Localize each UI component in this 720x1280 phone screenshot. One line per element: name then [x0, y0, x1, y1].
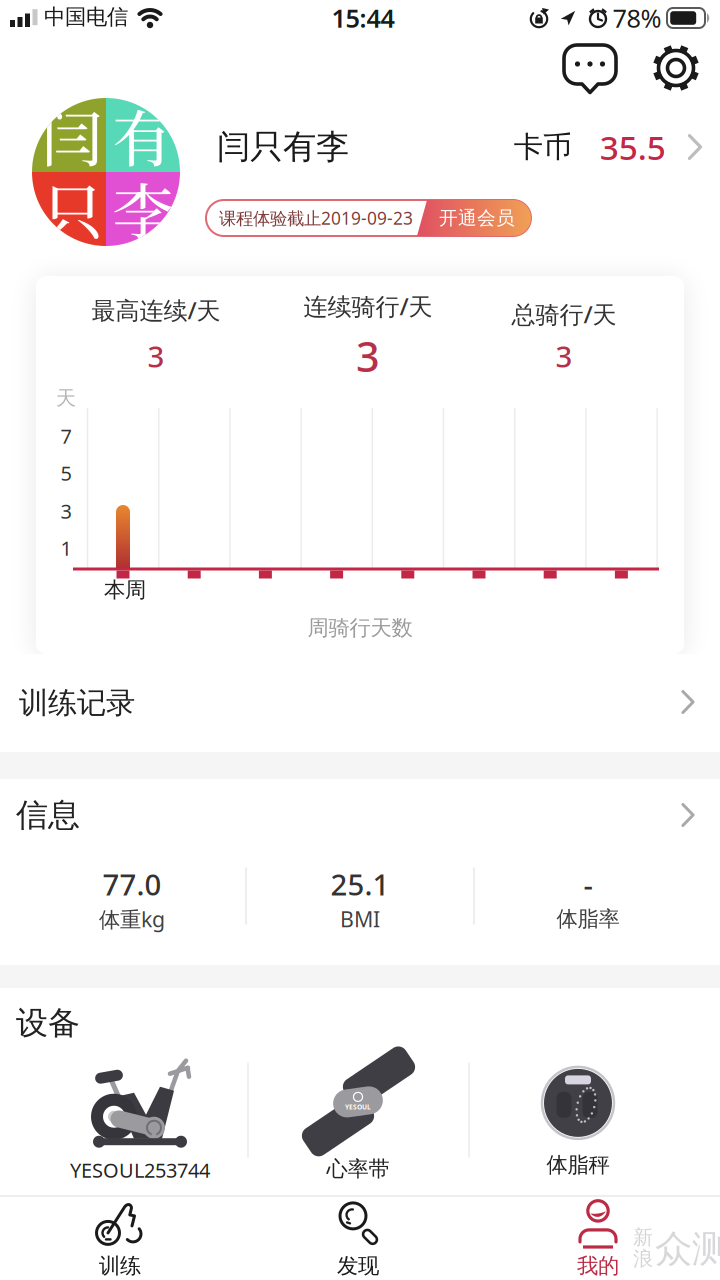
- staticText: 77.0: [102, 864, 161, 903]
- button[interactable]: 卡币: [514, 125, 702, 169]
- button[interactable]: YESOUL253744: [70, 1057, 210, 1183]
- button[interactable]: [562, 42, 618, 94]
- staticText: 25.1: [330, 864, 389, 903]
- staticText: 1: [60, 535, 71, 561]
- staticText: 李: [112, 164, 173, 252]
- staticText: 卡币: [514, 129, 572, 165]
- staticText: 只: [41, 164, 102, 252]
- button[interactable]: 训练记录: [0, 654, 720, 752]
- staticText: 7: [60, 423, 71, 449]
- staticText: 35.5: [600, 125, 666, 169]
- staticText: BMI: [340, 905, 380, 933]
- staticText: 连续骑行/天: [303, 290, 432, 322]
- staticText: 周骑行天数: [307, 615, 412, 641]
- staticText: 3: [60, 498, 71, 524]
- button[interactable]: YESOUL: [306, 1062, 410, 1182]
- staticText: 中国电信: [44, 4, 128, 30]
- button[interactable]: [649, 41, 703, 95]
- staticText: 众测: [655, 1226, 720, 1272]
- staticText: -: [583, 864, 592, 903]
- button[interactable]: 训练: [30, 1198, 210, 1280]
- staticText: 闫: [41, 91, 102, 179]
- staticText: 体重kg: [99, 905, 165, 933]
- staticText: 我的: [577, 1253, 619, 1279]
- staticText: 训练: [99, 1253, 141, 1279]
- staticText: 开通会员: [439, 206, 515, 229]
- staticText: 体脂率: [556, 906, 619, 932]
- button[interactable]: 信息: [0, 779, 720, 849]
- staticText: 设备: [16, 1003, 80, 1043]
- staticText: 最高连续/天: [91, 294, 220, 326]
- button[interactable]: 开通会员: [417, 200, 531, 236]
- staticText: 78%: [612, 1, 661, 35]
- staticText: 有: [112, 91, 173, 179]
- button[interactable]: 闫只有李: [217, 126, 349, 167]
- staticText: 3: [555, 336, 572, 375]
- staticText: 课程体验截止2019-09-23: [219, 206, 413, 229]
- staticText: 心率带: [326, 1156, 389, 1182]
- staticText: 信息: [16, 795, 80, 835]
- staticText: 3: [147, 336, 164, 375]
- staticText: YESOUL: [345, 1102, 371, 1111]
- staticText: 体脂秤: [546, 1152, 609, 1178]
- button[interactable]: 闫: [32, 98, 180, 246]
- staticText: 5: [60, 460, 71, 486]
- staticText: 发现: [337, 1253, 379, 1279]
- staticText: 总骑行/天: [511, 298, 616, 330]
- button[interactable]: 我的: [508, 1198, 688, 1280]
- staticText: 训练记录: [19, 685, 135, 721]
- staticText: 15:44: [331, 1, 394, 35]
- staticText: 本周: [104, 577, 146, 603]
- staticText: YESOUL253744: [70, 1157, 210, 1183]
- staticText: 闫只有李: [217, 126, 349, 167]
- button[interactable]: 发现: [268, 1198, 448, 1280]
- staticText: 浪: [633, 1246, 653, 1271]
- button[interactable]: 体脂秤: [541, 1066, 615, 1178]
- staticText: 3: [356, 329, 380, 383]
- staticText: 天: [56, 386, 76, 410]
- staticText: 新: [633, 1225, 653, 1249]
